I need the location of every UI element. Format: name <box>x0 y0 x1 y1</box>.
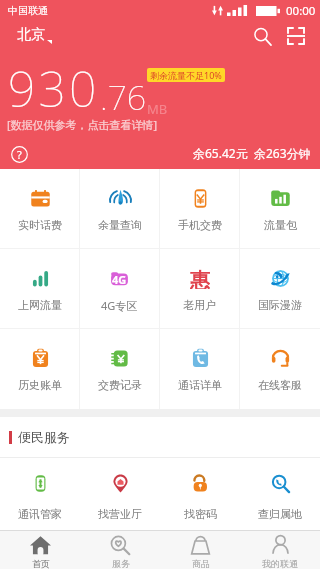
button[interactable]: 北京 <box>3 21 54 51</box>
button[interactable]: Scan <box>279 21 313 51</box>
staticText: 我的联通 <box>262 558 298 569</box>
staticText: 首页 <box>32 558 50 569</box>
button[interactable]: 历史账单 <box>0 329 79 409</box>
staticText: 惠 <box>190 268 210 289</box>
button[interactable]: 我的联通 <box>240 531 320 569</box>
staticText: 国际漫游 <box>258 298 302 312</box>
button[interactable]: 商品 <box>160 531 240 569</box>
staticText: 便民服务 <box>18 429 70 445</box>
staticText: 余量查询 <box>98 218 142 232</box>
staticText: 余263分钟 <box>254 145 311 161</box>
button[interactable]: 上网流量 <box>0 249 79 328</box>
staticText: 00:00 <box>286 3 316 19</box>
staticText: 余65.42元 <box>193 145 248 161</box>
staticText: 北京 <box>17 26 45 44</box>
button[interactable]: Help <box>7 142 31 166</box>
staticText: 930 <box>8 56 100 121</box>
button[interactable]: Search <box>245 21 279 51</box>
staticText: 实时话费 <box>18 218 62 232</box>
staticText: 4G <box>112 272 127 287</box>
button[interactable]: [数据仅供参考，点击查看详情] <box>7 117 158 132</box>
button[interactable]: 服务 <box>80 531 160 569</box>
staticText: 查归属地 <box>258 507 302 521</box>
button[interactable]: 国际漫游 <box>240 249 320 328</box>
button[interactable]: 交费记录 <box>80 329 159 409</box>
staticText: 交费记录 <box>98 378 142 392</box>
staticText: .76 <box>100 74 147 120</box>
staticText: 通讯管家 <box>18 507 62 521</box>
staticText: MB <box>147 100 168 118</box>
staticText: 在线客服 <box>258 378 302 392</box>
staticText: 上网流量 <box>18 298 62 312</box>
staticText: 找密码 <box>184 507 217 521</box>
button[interactable]: 实时话费 <box>0 169 79 248</box>
button[interactable]: 找营业厅 <box>80 458 160 530</box>
button[interactable]: 手机交费 <box>160 169 239 248</box>
staticText: 通话详单 <box>178 378 222 392</box>
staticText: 中国联通 <box>8 4 48 17</box>
staticText: 商品 <box>192 558 210 569</box>
staticText: ? <box>17 147 22 162</box>
staticText: 服务 <box>112 558 130 569</box>
staticText: 4G专区 <box>101 298 138 313</box>
button[interactable]: 找密码 <box>160 458 240 530</box>
button[interactable]: 在线客服 <box>240 329 320 409</box>
staticText: 流量包 <box>264 218 297 232</box>
staticText: 手机交费 <box>178 218 222 232</box>
staticText: 找营业厅 <box>98 507 142 521</box>
button[interactable]: 通话详单 <box>160 329 239 409</box>
staticText: 剩余流量不足10% <box>150 69 222 81</box>
button[interactable]: 查归属地 <box>240 458 320 530</box>
staticText: 老用户 <box>183 298 216 312</box>
button[interactable]: 首页 <box>0 531 80 569</box>
button[interactable]: 剩余流量不足10% <box>147 68 225 82</box>
button[interactable]: 流量包 <box>240 169 320 248</box>
button[interactable]: 惠 <box>160 249 239 328</box>
button[interactable]: 4G <box>80 249 159 328</box>
staticText: 历史账单 <box>18 378 62 392</box>
button[interactable]: 余量查询 <box>80 169 159 248</box>
button[interactable]: 通讯管家 <box>0 458 80 530</box>
